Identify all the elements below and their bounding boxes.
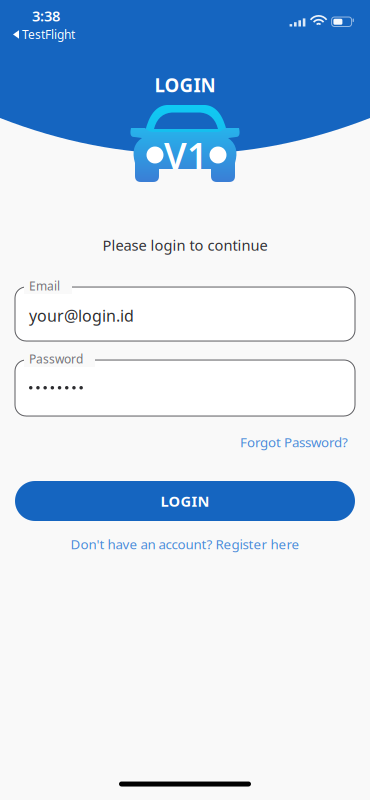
button[interactable]: Forgot Password? xyxy=(236,432,348,452)
staticText: Don't have an account? Register here xyxy=(70,535,299,553)
staticText: your@login.id xyxy=(29,305,134,326)
staticText: TestFlight xyxy=(22,26,75,42)
staticText: Please login to continue xyxy=(102,235,267,255)
staticText: Password xyxy=(29,351,83,367)
staticText: V1 xyxy=(164,131,208,179)
staticText: LOGIN xyxy=(154,73,215,97)
staticText: Forgot Password? xyxy=(240,433,348,451)
staticText: LOGIN xyxy=(160,491,209,511)
button[interactable]: LOGIN xyxy=(15,481,355,521)
staticText: 3:38 xyxy=(32,6,60,25)
button[interactable]: Don't have an account? Register here xyxy=(70,535,299,553)
staticText: Email xyxy=(29,278,60,294)
